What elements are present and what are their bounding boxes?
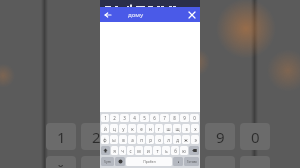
staticText: 5 — [143, 115, 146, 121]
button[interactable]: 6 — [150, 114, 159, 122]
button[interactable]: у — [119, 124, 127, 133]
button[interactable]: backspace — [189, 146, 199, 155]
button[interactable]: ю — [180, 146, 188, 155]
staticText: й — [104, 126, 107, 132]
staticText: д — [176, 137, 179, 143]
staticText: й — [56, 160, 66, 168]
button[interactable]: е — [137, 124, 145, 133]
staticText: 1 — [57, 127, 66, 147]
staticText: 2 — [113, 115, 116, 121]
button[interactable]: ы — [110, 135, 118, 144]
staticText: ц — [113, 126, 116, 132]
button[interactable]: д — [173, 135, 181, 144]
staticText: у — [122, 126, 125, 132]
button[interactable]: дому — [116, 7, 184, 22]
staticText: п — [140, 137, 143, 143]
staticText: х — [194, 126, 197, 132]
staticText: л — [167, 137, 170, 143]
staticText: Sym — [104, 159, 111, 164]
staticText: 4 — [133, 115, 136, 121]
button[interactable]: и — [144, 146, 152, 155]
staticText: с — [129, 148, 132, 154]
button[interactable]: 5 — [140, 114, 149, 122]
button[interactable]: ц — [110, 124, 118, 133]
button[interactable]: я — [111, 146, 118, 155]
button[interactable]: 2 — [110, 114, 119, 122]
button[interactable]: к — [128, 124, 136, 133]
staticText: 2 — [92, 127, 101, 147]
button[interactable]: а — [128, 135, 136, 144]
button[interactable]: г — [155, 124, 163, 133]
staticText: в — [122, 137, 125, 143]
staticText: о — [158, 137, 161, 143]
button[interactable]: ж — [182, 135, 190, 144]
button[interactable]: globe — [115, 157, 125, 166]
staticText: з — [185, 126, 188, 132]
button[interactable]: Clear search — [184, 7, 200, 22]
staticText: 0 — [251, 127, 260, 147]
button[interactable]: х — [191, 124, 199, 133]
button[interactable]: э — [191, 135, 199, 144]
button[interactable]: й — [101, 124, 109, 133]
button[interactable]: 0 — [190, 114, 199, 122]
button[interactable]: б — [171, 146, 179, 155]
button[interactable]: Готово — [184, 157, 199, 166]
staticText: 9 — [183, 115, 186, 121]
staticText: ф — [103, 137, 107, 143]
staticText: е — [140, 126, 143, 132]
button[interactable]: Sym — [101, 157, 114, 166]
button[interactable]: м — [135, 146, 143, 155]
button[interactable]: о — [155, 135, 163, 144]
button[interactable]: Пробел — [126, 157, 172, 166]
button[interactable]: н — [146, 124, 154, 133]
button[interactable]: р — [146, 135, 154, 144]
button[interactable]: ч — [119, 146, 126, 155]
staticText: р — [149, 137, 152, 143]
staticText: э — [194, 137, 197, 143]
staticText: я — [113, 148, 116, 154]
button[interactable]: 8 — [170, 114, 179, 122]
staticText: ц — [91, 160, 101, 168]
staticText: ж — [184, 137, 188, 143]
staticText: ч — [121, 148, 124, 154]
staticText: м — [137, 148, 141, 154]
button[interactable]: comma — [173, 157, 183, 166]
button[interactable]: с — [127, 146, 134, 155]
staticText: щ — [175, 126, 180, 132]
staticText: и — [147, 148, 150, 154]
staticText: 0 — [193, 115, 196, 121]
button[interactable]: ш — [164, 124, 172, 133]
button[interactable]: т — [153, 146, 161, 155]
button[interactable]: 7 — [160, 114, 169, 122]
button[interactable]: ь — [162, 146, 170, 155]
button[interactable]: з — [182, 124, 190, 133]
button[interactable]: в — [119, 135, 127, 144]
staticText: а — [131, 137, 134, 143]
staticText: Готово — [187, 160, 197, 164]
staticText: Пробел — [143, 159, 156, 164]
button[interactable]: shift — [101, 146, 110, 155]
button[interactable]: ф — [101, 135, 109, 144]
staticText: ы — [112, 137, 116, 143]
button[interactable]: щ — [173, 124, 181, 133]
staticText: 3 — [123, 115, 126, 121]
button[interactable]: 4 — [130, 114, 139, 122]
button[interactable]: 1 — [101, 114, 109, 122]
staticText: 7 — [163, 115, 166, 121]
button[interactable]: 9 — [180, 114, 189, 122]
button[interactable]: л — [164, 135, 172, 144]
staticText: к — [131, 126, 134, 132]
staticText: 9 — [216, 127, 225, 147]
button[interactable]: Back — [100, 7, 116, 22]
staticText: ь — [165, 148, 168, 154]
staticText: дому — [128, 11, 144, 19]
staticText: 6 — [153, 115, 156, 121]
staticText: г — [158, 126, 160, 132]
staticText: 1 — [104, 115, 107, 121]
staticText: т — [156, 148, 159, 154]
button[interactable]: 3 — [120, 114, 129, 122]
button[interactable]: п — [137, 135, 145, 144]
staticText: б — [174, 148, 177, 154]
